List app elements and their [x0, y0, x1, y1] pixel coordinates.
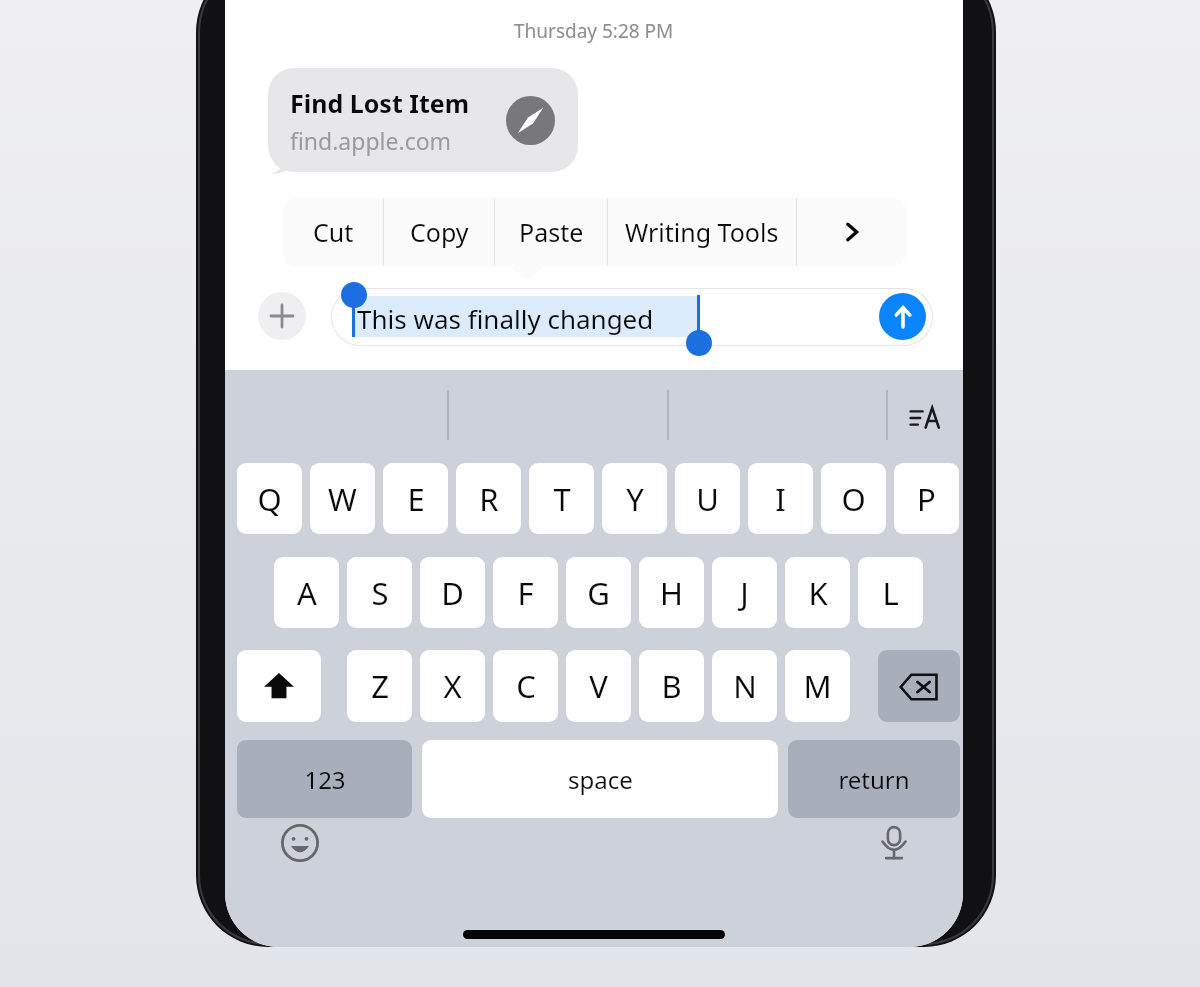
button[interactable]: E: [383, 463, 448, 534]
staticText: I: [775, 478, 786, 520]
button[interactable]: Shift: [237, 650, 321, 722]
button[interactable]: B: [639, 650, 704, 722]
staticText: Find Lost Item: [290, 86, 470, 120]
button[interactable]: Send: [879, 293, 926, 340]
staticText: M: [803, 665, 832, 707]
button[interactable]: H: [639, 557, 704, 628]
button[interactable]: V: [566, 650, 631, 722]
button[interactable]: P: [894, 463, 959, 534]
staticText: P: [917, 478, 936, 520]
button[interactable]: A: [274, 557, 339, 628]
staticText: W: [328, 478, 357, 520]
button[interactable]: D: [420, 557, 485, 628]
button[interactable]: Delete: [878, 650, 960, 722]
staticText: Thursday 5:28 PM: [514, 18, 674, 44]
button[interactable]: Cut: [283, 198, 383, 266]
staticText: H: [660, 572, 683, 614]
button[interactable]: Paste: [495, 198, 607, 266]
staticText: A: [297, 572, 317, 614]
staticText: S: [371, 572, 389, 614]
button[interactable]: L: [858, 557, 923, 628]
button[interactable]: Dictation: [870, 819, 918, 867]
button[interactable]: M: [785, 650, 850, 722]
staticText: E: [407, 478, 425, 520]
button[interactable]: Writing Tools: [608, 198, 796, 266]
staticText: Q: [257, 478, 282, 520]
staticText: B: [661, 665, 682, 707]
staticText: D: [441, 572, 464, 614]
button[interactable]: Add attachment: [258, 292, 306, 340]
staticText: find.apple.com: [290, 125, 452, 156]
button[interactable]: This was finally changed: [331, 288, 933, 346]
staticText: R: [479, 478, 499, 520]
staticText: K: [808, 572, 828, 614]
staticText: Copy: [410, 215, 469, 249]
button[interactable]: T: [529, 463, 594, 534]
button[interactable]: U: [675, 463, 740, 534]
button[interactable]: Q: [237, 463, 302, 534]
button[interactable]: C: [493, 650, 558, 722]
button[interactable]: Y: [602, 463, 667, 534]
staticText: N: [733, 665, 757, 707]
staticText: T: [553, 478, 571, 520]
staticText: C: [516, 665, 536, 707]
button[interactable]: K: [785, 557, 850, 628]
button[interactable]: Z: [347, 650, 412, 722]
staticText: G: [587, 572, 610, 614]
button[interactable]: O: [821, 463, 886, 534]
button[interactable]: X: [420, 650, 485, 722]
button[interactable]: W: [310, 463, 375, 534]
button[interactable]: J: [712, 557, 777, 628]
staticText: This was finally changed: [357, 301, 654, 336]
staticText: U: [696, 478, 719, 520]
button[interactable]: More actions: [797, 198, 906, 266]
staticText: O: [841, 478, 866, 520]
staticText: Paste: [519, 215, 584, 249]
staticText: V: [589, 665, 608, 707]
button[interactable]: I: [748, 463, 813, 534]
staticText: X: [443, 665, 462, 707]
staticText: space: [568, 763, 633, 796]
staticText: Cut: [313, 215, 354, 249]
staticText: Writing Tools: [625, 215, 779, 249]
button[interactable]: return: [788, 740, 960, 818]
staticText: Z: [371, 665, 389, 707]
button[interactable]: R: [456, 463, 521, 534]
staticText: F: [517, 572, 534, 614]
button[interactable]: G: [566, 557, 631, 628]
button[interactable]: N: [712, 650, 777, 722]
button[interactable]: F: [493, 557, 558, 628]
button[interactable]: 123: [237, 740, 412, 818]
staticText: Y: [626, 478, 644, 520]
button[interactable]: space: [422, 740, 778, 818]
staticText: L: [882, 572, 899, 614]
staticText: J: [740, 572, 749, 614]
staticText: return: [838, 763, 910, 796]
button[interactable]: Find Lost Item: [268, 68, 578, 172]
staticText: 123: [304, 763, 346, 796]
button[interactable]: Formatting: [905, 398, 945, 438]
button[interactable]: Emoji: [276, 819, 324, 867]
button[interactable]: S: [347, 557, 412, 628]
button[interactable]: Copy: [384, 198, 494, 266]
